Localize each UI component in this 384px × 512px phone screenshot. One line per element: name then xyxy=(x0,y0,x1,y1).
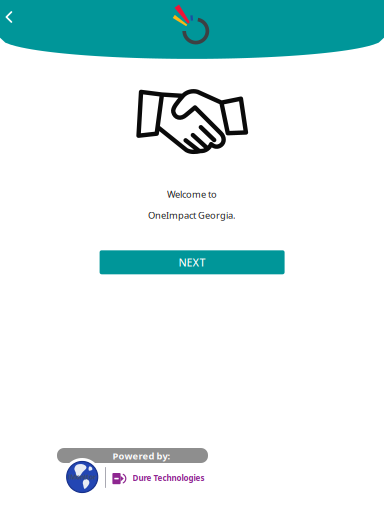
staticText: OneImpact Georgia. xyxy=(148,209,236,221)
staticText: Dure Technologies xyxy=(132,473,204,483)
staticText: NEXT xyxy=(179,255,206,269)
staticText: iMonitor xyxy=(68,473,96,481)
staticText: Powered by: xyxy=(112,450,170,462)
button[interactable]: Back xyxy=(0,2,24,32)
button[interactable]: NEXT xyxy=(100,250,285,274)
staticText: Welcome to xyxy=(167,188,217,200)
